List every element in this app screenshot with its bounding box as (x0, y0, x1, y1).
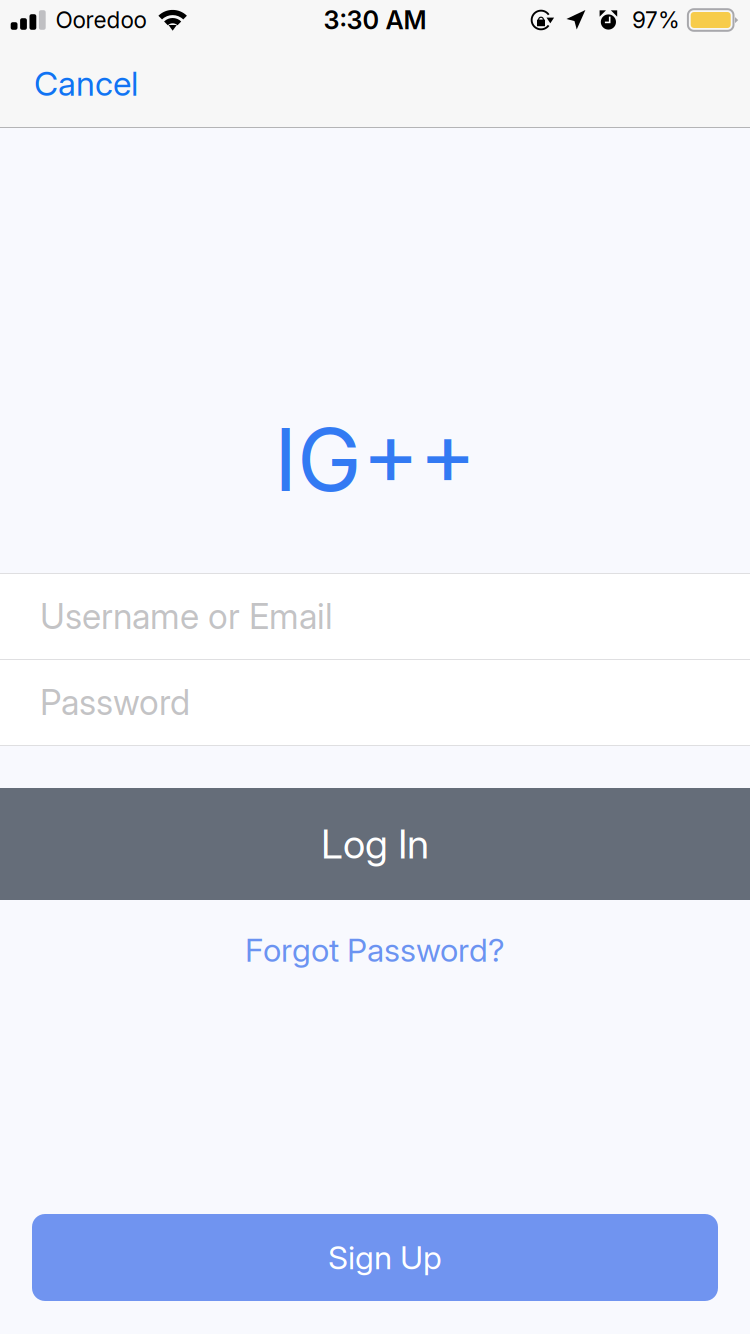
staticText: Forgot Password? (245, 931, 505, 969)
staticText: IG++ (274, 407, 476, 512)
staticText: Log In (321, 820, 429, 868)
staticText: 97% (632, 6, 680, 34)
staticText: Ooredoo (55, 6, 146, 34)
staticText: 3:30 AM (323, 5, 426, 35)
button[interactable]: Sign Up (32, 1214, 718, 1301)
staticText: Cancel (34, 63, 138, 104)
staticText: Username or Email (40, 595, 333, 637)
staticText: Sign Up (328, 1238, 442, 1277)
button[interactable]: Forgot Password? (0, 900, 750, 1000)
button[interactable]: Password (0, 660, 750, 745)
button[interactable]: Username or Email (0, 574, 750, 659)
button[interactable]: Log In (0, 788, 750, 900)
button[interactable]: Cancel (0, 40, 160, 127)
staticText: Password (40, 681, 190, 723)
